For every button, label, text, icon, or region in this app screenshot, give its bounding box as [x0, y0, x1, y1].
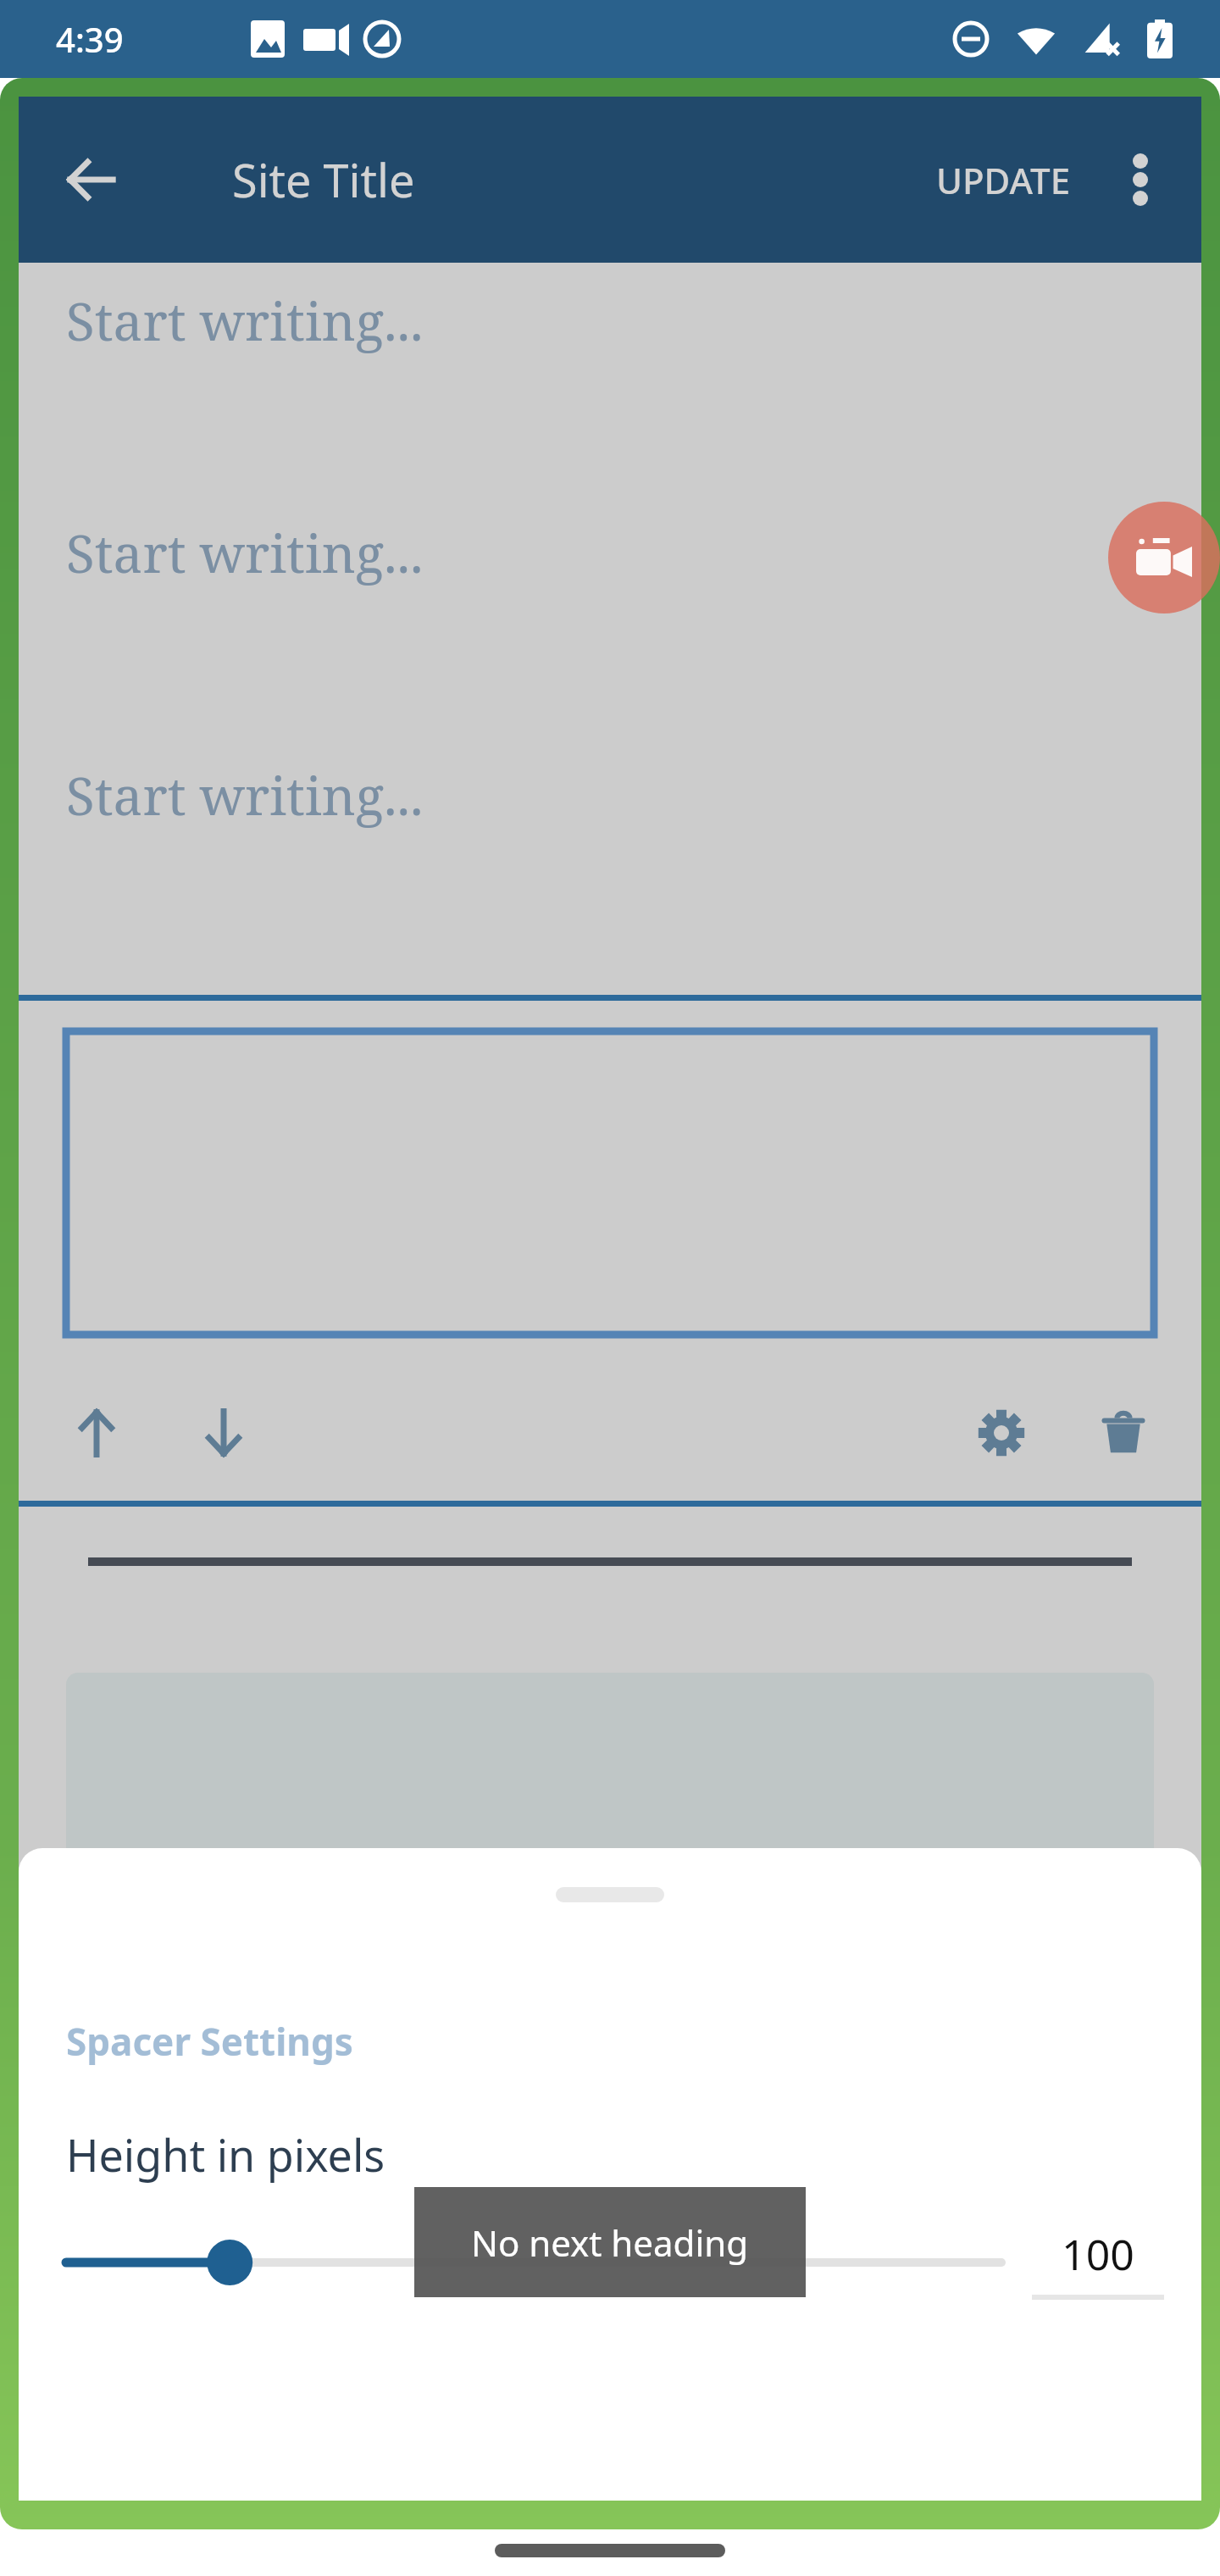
button[interactable]	[19, 1001, 1201, 1365]
button[interactable]: Start writing...	[19, 505, 1201, 747]
staticText: Start writing...	[66, 759, 424, 830]
staticText: Start writing...	[66, 517, 424, 588]
staticText: Height in pixels	[66, 2124, 385, 2185]
button[interactable]: Back	[46, 134, 137, 225]
staticText: No next heading	[471, 2218, 749, 2267]
button[interactable]: 100	[1032, 2225, 1164, 2300]
staticText: 4:39	[56, 16, 124, 62]
button[interactable]: Start writing...	[19, 747, 1201, 990]
button[interactable]: Settings	[957, 1389, 1045, 1477]
staticText: 100	[1062, 2225, 1134, 2283]
staticText: Spacer Settings	[66, 2016, 353, 2067]
staticText: Site Title	[232, 148, 415, 211]
button[interactable]: More options	[1100, 139, 1181, 220]
button[interactable]: Move up	[53, 1389, 141, 1477]
button[interactable]: Move down	[180, 1389, 268, 1477]
staticText: Start writing...	[66, 285, 424, 356]
button[interactable]: UPDATE	[924, 142, 1083, 218]
button[interactable]	[66, 1673, 1154, 1931]
button[interactable]: Start writing...	[19, 263, 1201, 505]
button[interactable]: Delete	[1079, 1389, 1167, 1477]
staticText: UPDATE	[936, 156, 1071, 204]
button[interactable]: Add media	[1108, 502, 1220, 613]
button[interactable]: Height slider	[66, 2216, 1001, 2309]
button[interactable]	[66, 2021, 1201, 2224]
